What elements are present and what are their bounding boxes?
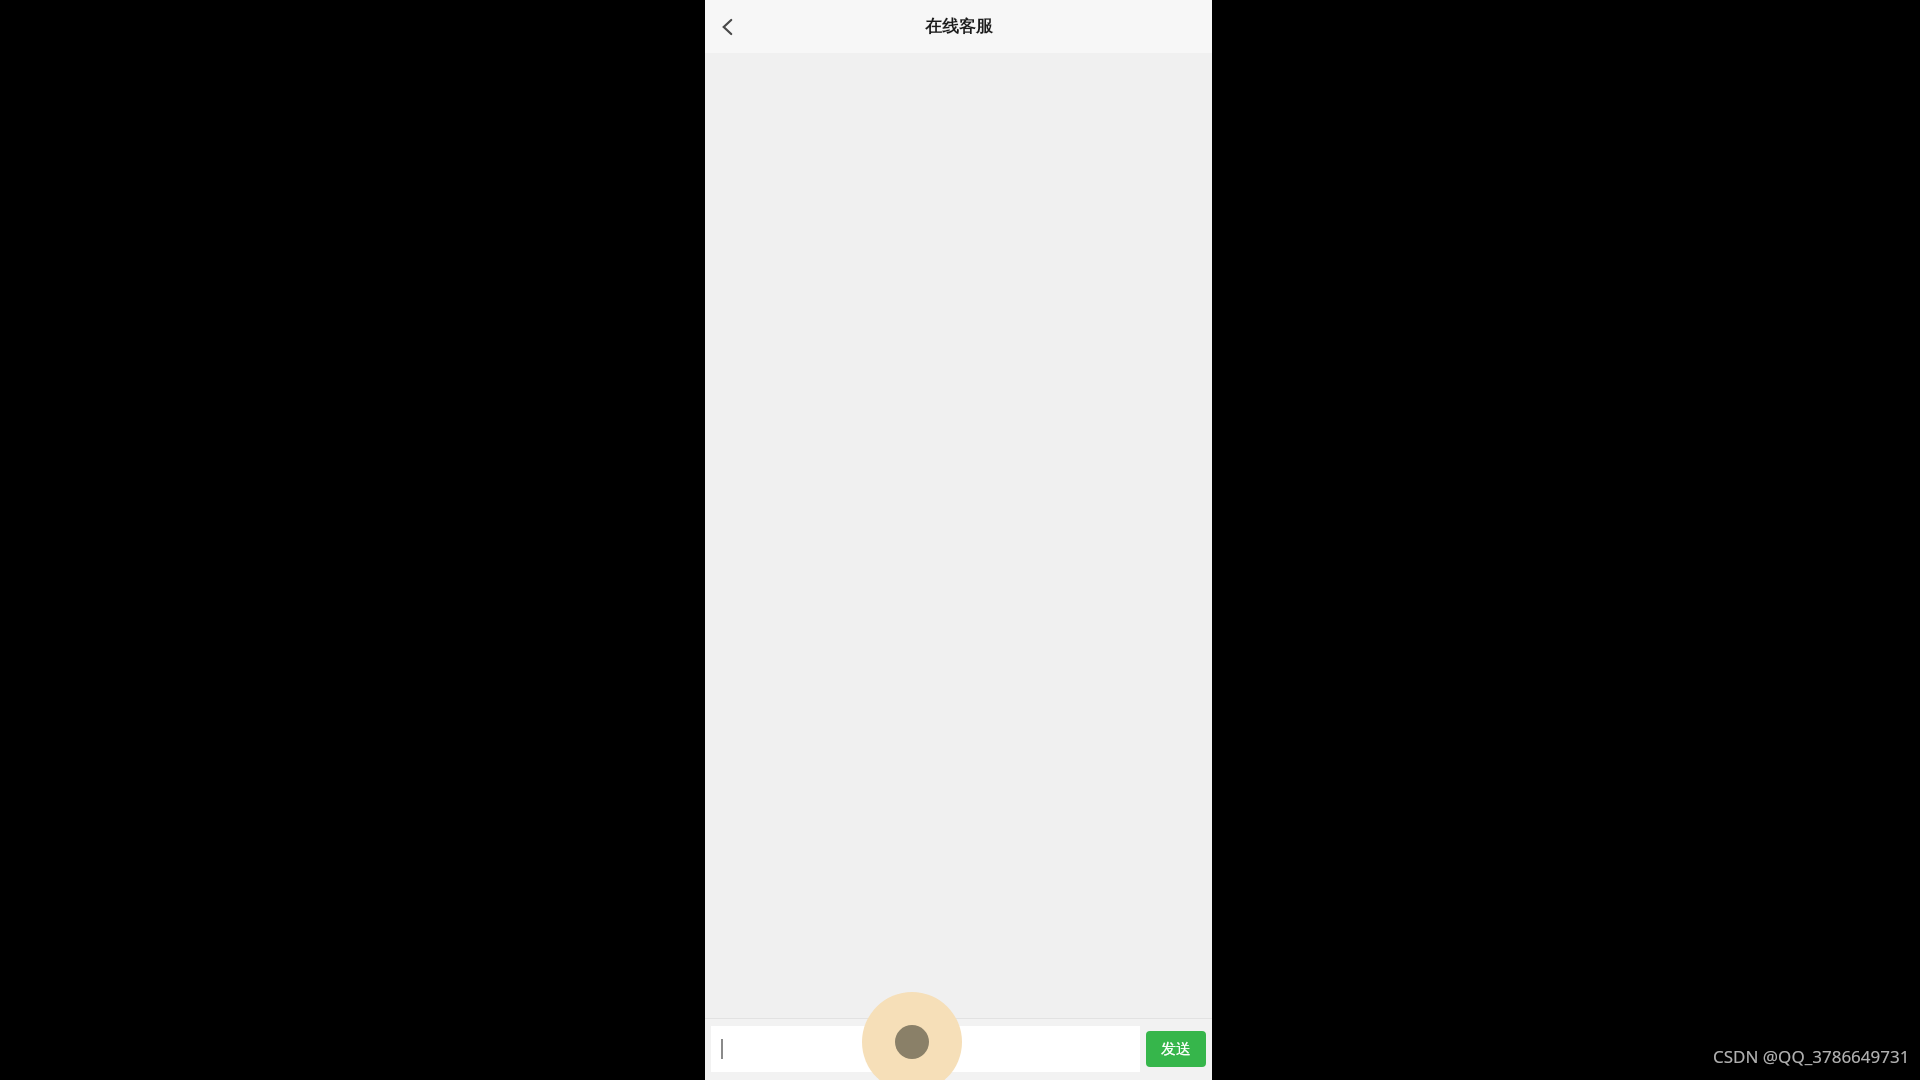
button[interactable]: 发送 xyxy=(1146,1031,1206,1067)
staticText: 在线客服 xyxy=(925,16,993,37)
button[interactable]: Back xyxy=(705,3,753,51)
button[interactable] xyxy=(711,1026,1140,1072)
staticText: 发送 xyxy=(1161,1040,1191,1059)
staticText: CSDN @QQ_3786649731 xyxy=(1713,1045,1910,1068)
